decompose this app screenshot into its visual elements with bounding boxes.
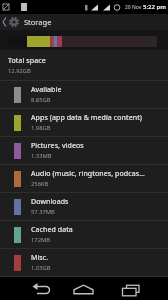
staticText: Apps (app data & media content) <box>31 113 142 123</box>
button[interactable] <box>112 277 168 300</box>
staticText: Total space <box>8 56 46 66</box>
staticText: 1.03GB <box>31 264 51 272</box>
button[interactable]: Misc. <box>0 249 168 277</box>
staticText: 1.33MB <box>31 152 52 160</box>
button[interactable] <box>56 277 112 300</box>
staticText: Downloads <box>31 197 69 207</box>
staticText: 12.92GB <box>8 67 31 75</box>
button[interactable]: Available <box>0 81 168 109</box>
button[interactable]: Total space <box>0 50 168 81</box>
button[interactable] <box>0 277 56 300</box>
staticText: 5:22 pm <box>143 3 166 11</box>
button[interactable]: Apps (app data & media content) <box>0 109 168 137</box>
staticText: Available <box>31 85 62 95</box>
staticText: Cached data <box>31 225 73 235</box>
button[interactable]: Cached data <box>0 221 168 249</box>
staticText: Misc. <box>31 253 49 263</box>
button[interactable]: Downloads <box>0 193 168 221</box>
button[interactable]: Audio (music, ringtones, podcas… <box>0 165 168 193</box>
button[interactable]: Pictures, videos <box>0 137 168 165</box>
staticText: Storage <box>24 17 52 27</box>
staticText: Audio (music, ringtones, podcas… <box>31 169 145 179</box>
staticText: 57.37MB <box>31 208 55 216</box>
staticText: 1.98GB <box>31 124 51 132</box>
staticText: 20 Nov <box>125 4 143 11</box>
staticText: 172MB <box>31 236 50 244</box>
staticText: 256KB <box>31 180 49 188</box>
button[interactable]: Storage <box>0 14 168 30</box>
staticText: 8.85GB <box>31 96 51 104</box>
staticText: Pictures, videos <box>31 141 84 151</box>
